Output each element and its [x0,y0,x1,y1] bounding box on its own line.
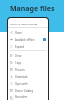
staticText: Share [15,31,46,35]
button[interactable]: FOLDER [8,94,48,100]
button[interactable]: SHARE [8,29,48,36]
other: FOLDER [10,54,13,57]
button[interactable]: Search in Device storage [8,20,48,27]
other: IMAGE [10,68,13,71]
button[interactable]: FOLDER [8,59,48,66]
staticText: Download [15,75,46,79]
button[interactable]: DOWNLOAD [8,73,48,80]
other: FOLDER [10,61,13,64]
other: FOLDER [10,96,13,99]
staticText: Device Catalog [15,89,46,93]
other: Selected [43,38,46,41]
button[interactable]: IMAGE [8,87,48,94]
other: CLOUD [10,38,13,41]
staticText: Drive [15,54,46,58]
staticText: Manage files [10,4,55,14]
staticText: Pictures [15,68,46,72]
button[interactable]: CLOUD [8,36,48,43]
button[interactable]: IMAGE [8,66,48,73]
other: SHARE [10,31,13,34]
staticText: Available offline [15,38,43,42]
other: EXPAND [10,45,13,48]
staticText: Recorders [15,95,46,99]
other: DOWNLOAD [10,75,13,78]
staticText: Open with [15,82,46,86]
button[interactable]: EXPAND [8,43,48,50]
button[interactable]: FOLDER [8,52,48,59]
button[interactable]: EXPAND [8,80,48,87]
other: IMAGE [10,89,13,92]
staticText: Copy [15,61,46,65]
staticText: Expand [15,45,46,49]
staticText: Search in Device storage [10,22,38,25]
other: EXPAND [10,82,13,85]
